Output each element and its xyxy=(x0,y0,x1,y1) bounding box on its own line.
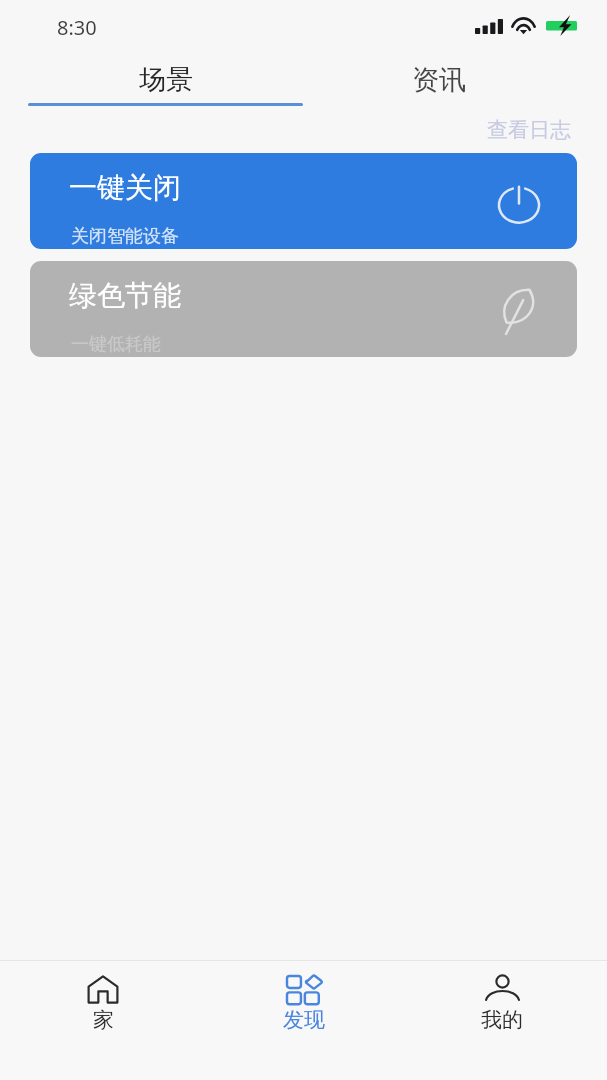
button[interactable]: 绿色节能 xyxy=(30,261,577,357)
button[interactable]: Discover xyxy=(244,966,364,1042)
button[interactable]: 一键关闭 xyxy=(30,153,577,249)
staticText: 关闭智能设备 xyxy=(71,225,179,248)
other: Eco saving mode xyxy=(493,283,545,335)
staticText: 场景 xyxy=(139,63,193,97)
staticText: 资讯 xyxy=(412,63,466,97)
staticText: 一键关闭 xyxy=(69,170,181,205)
staticText: 家 xyxy=(93,1007,114,1033)
other: Turn off all devices xyxy=(493,175,545,227)
staticText: 8:30 xyxy=(57,14,97,41)
staticText: 绿色节能 xyxy=(69,278,181,313)
button[interactable]: 场景 xyxy=(28,52,303,110)
button[interactable]: Profile xyxy=(442,966,562,1042)
button[interactable]: 资讯 xyxy=(303,52,575,110)
staticText: 发现 xyxy=(283,1007,325,1033)
button[interactable]: 查看日志 xyxy=(475,113,607,147)
staticText: 一键低耗能 xyxy=(71,333,161,356)
button[interactable]: Home xyxy=(43,966,163,1042)
staticText: 我的 xyxy=(481,1007,523,1033)
